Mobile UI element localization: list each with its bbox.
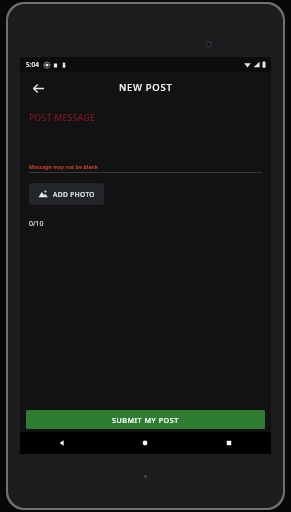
button[interactable]: Recent apps bbox=[187, 432, 271, 454]
staticText: NEW POST bbox=[119, 81, 173, 94]
staticText: Message may not be blank bbox=[29, 163, 98, 170]
staticText: POST MESSAGE bbox=[29, 112, 96, 124]
button[interactable]: Home bbox=[103, 432, 187, 454]
staticText: 5:04 bbox=[26, 60, 39, 69]
staticText: 0/10 bbox=[29, 219, 44, 229]
button[interactable]: Back bbox=[20, 432, 103, 454]
button[interactable]: SUBMIT MY POST bbox=[26, 410, 265, 429]
button[interactable]: ADD PHOTO bbox=[29, 183, 104, 205]
button[interactable]: Back bbox=[26, 76, 50, 100]
staticText: ADD PHOTO bbox=[53, 190, 95, 199]
staticText: SUBMIT MY POST bbox=[112, 415, 179, 425]
